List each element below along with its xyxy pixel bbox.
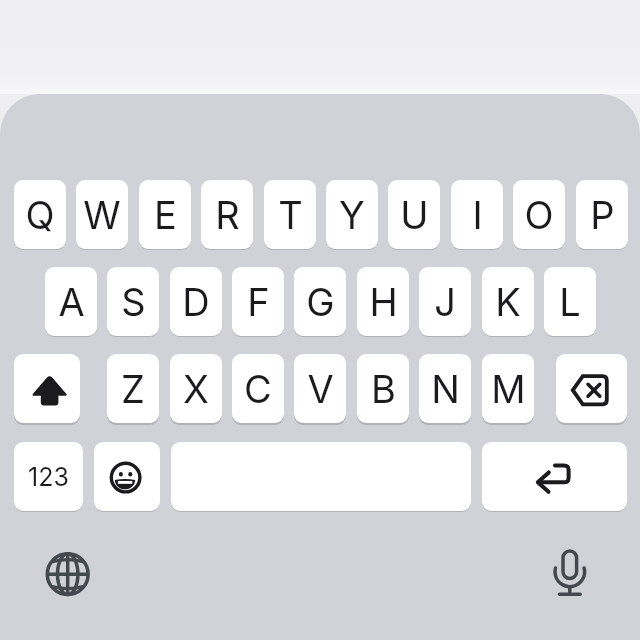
button[interactable]: N	[419, 354, 471, 423]
button[interactable]: I	[451, 180, 503, 249]
staticText: 123	[28, 462, 69, 492]
button[interactable]: D	[170, 267, 222, 336]
button[interactable]: B	[357, 354, 409, 423]
staticText: M	[491, 366, 526, 412]
staticText: Y	[339, 192, 365, 238]
button[interactable]: R	[201, 180, 253, 249]
button[interactable]	[556, 354, 627, 423]
button[interactable]: M	[482, 354, 534, 423]
staticText: H	[369, 279, 398, 325]
button[interactable]: O	[513, 180, 565, 249]
staticText: W	[83, 192, 121, 238]
button[interactable]: Q	[14, 180, 66, 249]
button[interactable]: S	[107, 267, 159, 336]
button[interactable]	[482, 442, 627, 511]
staticText: L	[559, 279, 581, 325]
button[interactable]: K	[482, 267, 534, 336]
button[interactable]: A	[45, 267, 97, 336]
staticText: I	[472, 192, 483, 238]
button[interactable]	[540, 545, 600, 605]
button[interactable]: X	[170, 354, 222, 423]
staticText: N	[431, 366, 460, 412]
staticText: J	[434, 279, 456, 325]
button[interactable]: U	[388, 180, 440, 249]
button[interactable]	[14, 354, 80, 423]
button[interactable]: J	[419, 267, 471, 336]
staticText: Q	[25, 192, 55, 238]
staticText: S	[121, 279, 146, 325]
staticText: D	[182, 279, 210, 325]
button[interactable]: Y	[326, 180, 378, 249]
staticText: C	[244, 366, 272, 412]
button[interactable]: G	[294, 267, 346, 336]
staticText: O	[524, 192, 554, 238]
staticText: K	[495, 279, 521, 325]
staticText: G	[306, 279, 335, 325]
button[interactable]: V	[294, 354, 346, 423]
staticText: U	[400, 192, 429, 238]
button[interactable]: E	[139, 180, 191, 249]
staticText: V	[307, 366, 334, 412]
button[interactable]: L	[544, 267, 596, 336]
button[interactable]: F	[232, 267, 284, 336]
staticText: Z	[121, 366, 145, 412]
button[interactable]: W	[76, 180, 128, 249]
staticText: R	[215, 192, 240, 238]
staticText: X	[183, 366, 209, 412]
staticText: F	[247, 279, 270, 325]
staticText: T	[278, 192, 303, 238]
staticText: A	[58, 279, 85, 325]
button[interactable]	[94, 442, 160, 511]
button[interactable]	[38, 545, 98, 605]
button[interactable]: H	[357, 267, 409, 336]
button[interactable]	[171, 442, 471, 511]
staticText: E	[154, 192, 177, 238]
button[interactable]: P	[576, 180, 628, 249]
button[interactable]: Z	[107, 354, 159, 423]
button[interactable]: C	[232, 354, 284, 423]
staticText: B	[371, 366, 396, 412]
button[interactable]: 123	[14, 442, 83, 511]
staticText: P	[590, 192, 615, 238]
button[interactable]: T	[264, 180, 316, 249]
